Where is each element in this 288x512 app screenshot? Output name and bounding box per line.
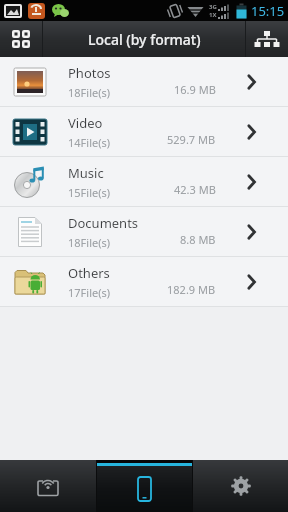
staticText: 14File(s) <box>68 135 111 150</box>
staticText: 16.9 MB <box>174 82 216 97</box>
staticText: Documents <box>68 214 139 232</box>
staticText: 18File(s) <box>68 235 111 250</box>
staticText: 15:15 <box>251 2 285 20</box>
staticText: Music <box>68 164 104 182</box>
staticText: 17File(s) <box>68 285 111 300</box>
staticText: 1X <box>209 11 217 19</box>
staticText: 42.3 MB <box>174 182 216 197</box>
staticText: 3G <box>209 3 217 11</box>
button[interactable] <box>0 21 42 57</box>
button[interactable] <box>246 21 288 57</box>
staticText: 18File(s) <box>68 85 111 100</box>
button[interactable] <box>0 460 96 512</box>
button[interactable] <box>193 460 288 512</box>
button[interactable]: Documents <box>0 207 288 256</box>
button[interactable]: Others <box>0 257 288 306</box>
staticText: 8.8 MB <box>180 232 216 247</box>
staticText: 182.9 MB <box>167 282 216 297</box>
staticText: 529.7 MB <box>167 132 216 147</box>
button[interactable]: Video <box>0 107 288 156</box>
staticText: Video <box>68 114 103 132</box>
button[interactable]: Photos <box>0 57 288 106</box>
button[interactable] <box>97 460 192 512</box>
staticText: 15File(s) <box>68 185 111 200</box>
button[interactable]: Music <box>0 157 288 206</box>
staticText: Others <box>68 264 110 282</box>
staticText: Local (by format) <box>88 30 201 49</box>
staticText: Photos <box>68 64 111 82</box>
